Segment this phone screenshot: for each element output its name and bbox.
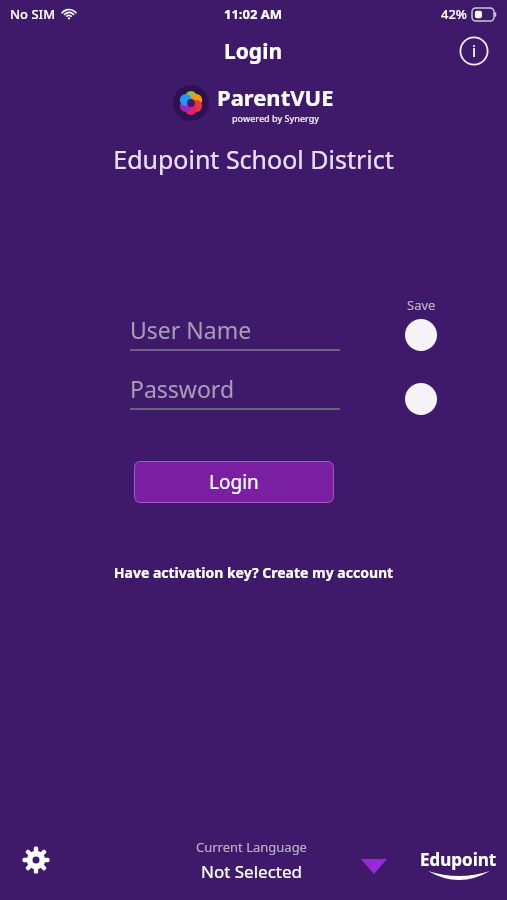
staticText: Edupoint xyxy=(420,848,497,871)
button[interactable]: Settings xyxy=(16,840,56,880)
staticText: ParentVUE xyxy=(217,82,334,112)
staticText: 11:02 AM xyxy=(224,5,283,23)
staticText: Current Language xyxy=(196,838,307,856)
button[interactable]: Select language xyxy=(359,851,389,881)
staticText: i xyxy=(472,40,477,62)
staticText: Login xyxy=(224,37,283,66)
button[interactable]: Save user name xyxy=(405,319,437,351)
staticText: Edupoint School District xyxy=(0,142,507,176)
button[interactable]: Information xyxy=(457,34,491,68)
staticText: Not Selected xyxy=(201,860,302,883)
button[interactable]: Have activation key? Create my account xyxy=(0,559,507,586)
staticText: Login xyxy=(209,469,259,495)
staticText: No SIM xyxy=(10,5,56,23)
staticText: Save xyxy=(407,296,436,314)
staticText: 42% xyxy=(441,5,467,23)
staticText: User Name xyxy=(130,314,252,345)
button[interactable]: Save password xyxy=(405,383,437,415)
button[interactable]: Login xyxy=(134,461,334,503)
button[interactable]: Current Language xyxy=(196,838,307,883)
staticText: powered by Synergy xyxy=(232,112,320,124)
staticText: Password xyxy=(130,373,235,404)
